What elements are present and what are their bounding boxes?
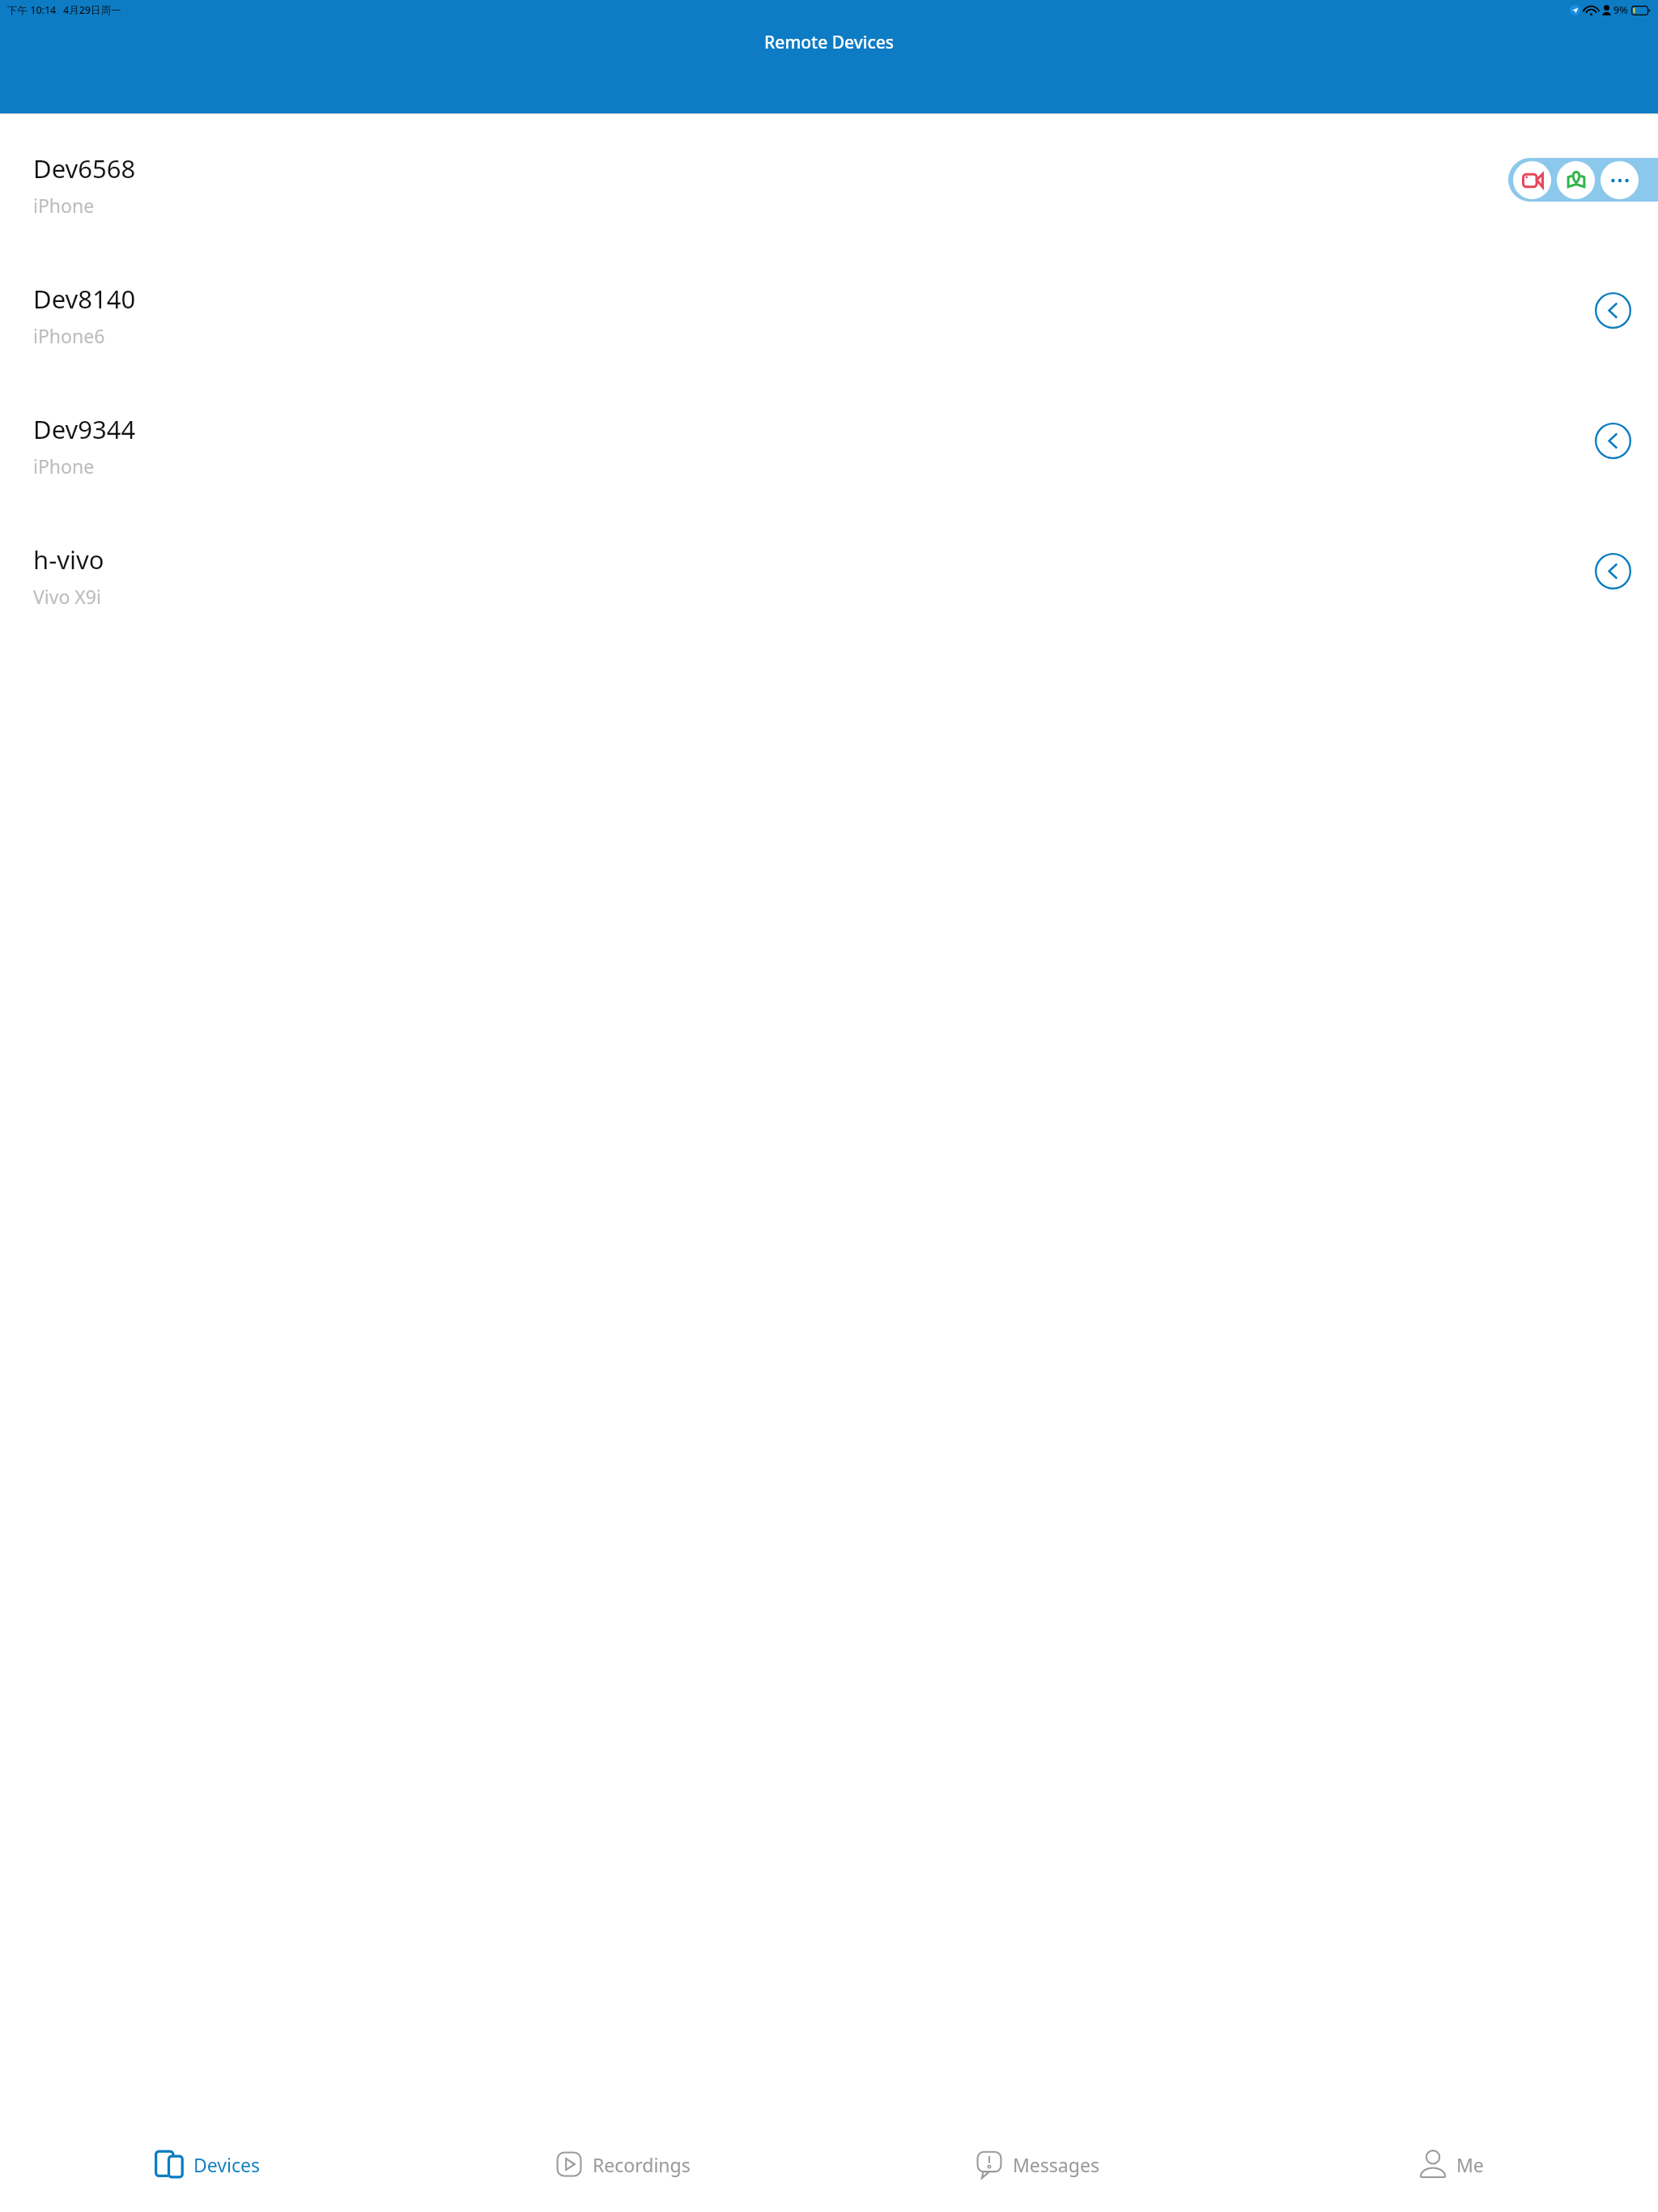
- staticText: Devices: [193, 2152, 260, 2177]
- button[interactable]: Dev6568: [0, 119, 1658, 249]
- staticText: Remote Devices: [764, 31, 894, 54]
- button[interactable]: Recordings: [414, 2116, 829, 2212]
- staticText: Me: [1456, 2152, 1484, 2177]
- staticText: h-vivo: [33, 542, 104, 576]
- staticText: 9%: [1613, 3, 1628, 17]
- staticText: iPhone: [33, 453, 95, 479]
- staticText: Messages: [1013, 2152, 1099, 2177]
- button[interactable]: Me: [1243, 2116, 1658, 2212]
- button[interactable]: Dev9344: [0, 380, 1658, 510]
- staticText: 4月29日周一: [63, 3, 121, 17]
- button[interactable]: Video call: [1513, 161, 1551, 199]
- staticText: iPhone: [33, 193, 95, 218]
- button[interactable]: Expand device actions: [1590, 418, 1635, 463]
- button[interactable]: Expand device actions: [1590, 548, 1635, 593]
- button[interactable]: Dev8140: [0, 249, 1658, 380]
- staticText: Dev9344: [33, 412, 136, 446]
- button[interactable]: More options: [1601, 161, 1639, 199]
- staticText: Dev6568: [33, 151, 136, 185]
- button[interactable]: Messages: [829, 2116, 1243, 2212]
- staticText: 下午 10:14: [7, 3, 57, 17]
- staticText: Vivo X9i: [33, 584, 101, 609]
- button[interactable]: Location: [1557, 161, 1595, 199]
- button[interactable]: Devices: [0, 2116, 414, 2212]
- staticText: iPhone6: [33, 323, 105, 348]
- button[interactable]: h-vivo: [0, 510, 1658, 640]
- staticText: Recordings: [593, 2152, 691, 2177]
- button[interactable]: Expand device actions: [1590, 287, 1635, 333]
- staticText: Dev8140: [33, 282, 136, 316]
